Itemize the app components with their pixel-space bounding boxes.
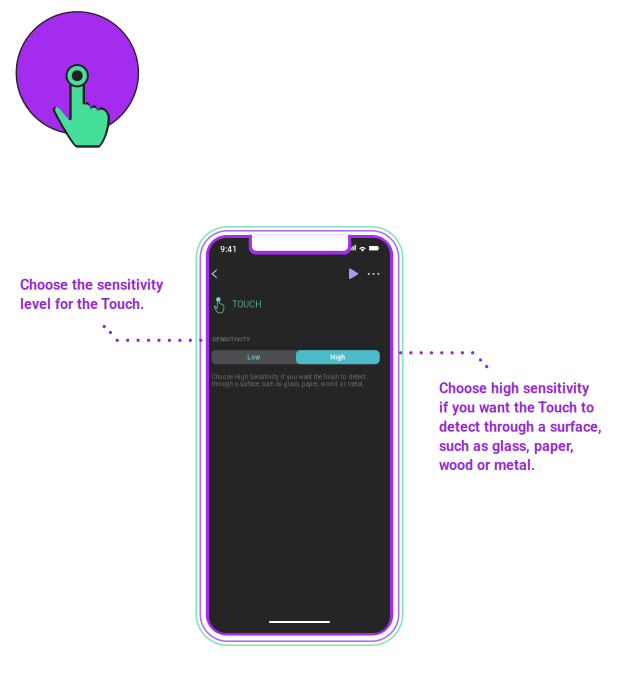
button[interactable]: High: [296, 350, 380, 364]
button[interactable]: Back: [210, 265, 225, 283]
staticText: Choose High Sensitivity if you want the …: [212, 373, 366, 381]
staticText: TOUCH: [232, 299, 261, 310]
staticText: such as glass, paper,: [439, 438, 574, 454]
button[interactable]: Low: [211, 350, 296, 364]
staticText: SENSITIVITY: [212, 335, 250, 343]
staticText: wood or metal.: [439, 457, 535, 474]
staticText: detect through a surface,: [439, 418, 602, 435]
staticText: Choose high sensitivity: [439, 380, 589, 397]
staticText: Low: [247, 353, 260, 361]
staticText: level for the Touch.: [20, 296, 144, 312]
staticText: Choose the sensitivity: [20, 276, 163, 293]
staticText: if you want the Touch to: [439, 399, 594, 416]
staticText: 9:41: [220, 245, 237, 254]
staticText: through a surface, such as glass, paper,…: [212, 380, 365, 388]
button[interactable]: Play: [346, 265, 361, 283]
button[interactable]: More options: [367, 265, 381, 283]
staticText: High: [330, 353, 345, 361]
